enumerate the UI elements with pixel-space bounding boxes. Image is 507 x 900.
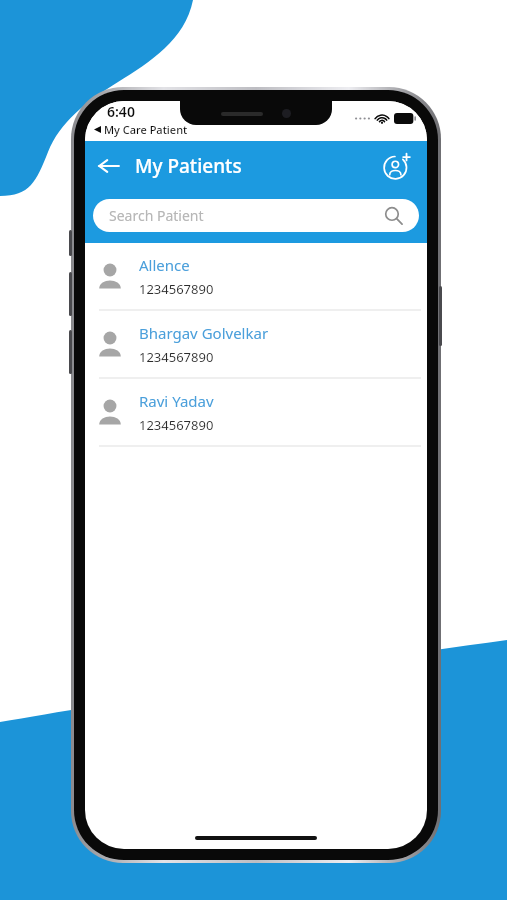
button[interactable]: Bhargav Golvelkar — [85, 311, 427, 379]
staticText: Bhargav Golvelkar — [139, 323, 269, 343]
staticText: 1234567890 — [139, 348, 214, 366]
staticText: Search Patient — [109, 206, 204, 225]
staticText: My Care Patient — [104, 122, 188, 137]
button[interactable]: Ravi Yadav — [85, 379, 427, 447]
button[interactable]: Allence — [85, 243, 427, 311]
button[interactable]: Add patient — [377, 146, 417, 186]
staticText: My Patients — [135, 153, 242, 179]
button[interactable]: Back — [91, 148, 127, 184]
button[interactable]: Search Patient — [93, 199, 419, 232]
staticText: Ravi Yadav — [139, 391, 214, 411]
staticText: 6:40 — [107, 102, 135, 121]
staticText: Allence — [139, 255, 190, 275]
staticText: 1234567890 — [139, 416, 214, 434]
staticText: 1234567890 — [139, 280, 214, 298]
